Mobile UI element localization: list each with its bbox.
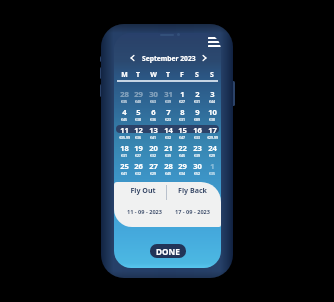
button[interactable]: 9 (188, 107, 206, 117)
button[interactable]: 3 (203, 89, 221, 99)
staticText: €39 (194, 153, 200, 158)
button[interactable]: 30 (144, 89, 162, 99)
staticText: €52 (194, 171, 200, 176)
staticText: S (195, 70, 199, 79)
button[interactable]: 8 (173, 107, 191, 117)
staticText: 28 (120, 89, 129, 99)
staticText: 25 (120, 161, 129, 171)
staticText: €33 (194, 135, 200, 140)
staticText: 11 (120, 125, 129, 135)
button[interactable]: Next month (199, 51, 209, 65)
button[interactable]: 1 (173, 89, 191, 99)
button[interactable]: 28 (115, 89, 133, 99)
button[interactable]: 17 (203, 125, 221, 135)
button[interactable]: 15 (173, 125, 191, 135)
button[interactable]: 27 (144, 161, 162, 171)
button[interactable]: 21 (159, 143, 177, 153)
staticText: 13 (149, 125, 158, 135)
button[interactable]: 29 (173, 161, 191, 171)
button[interactable]: Fly Out (117, 185, 169, 195)
staticText: 27 (149, 161, 158, 171)
staticText: 5 (136, 107, 141, 117)
staticText: €38 (209, 117, 215, 122)
staticText: 9 (195, 107, 200, 117)
button[interactable]: 4 (115, 107, 133, 117)
staticText: €45 (121, 117, 127, 122)
staticText: F (180, 70, 184, 79)
staticText: €38 (135, 117, 141, 122)
staticText: 2 (195, 89, 200, 99)
staticText: €44 (209, 99, 215, 104)
button[interactable]: 24 (203, 143, 221, 153)
button[interactable]: 18 (115, 143, 133, 153)
staticText: 17 (208, 125, 217, 135)
button[interactable]: 26 (129, 161, 147, 171)
button[interactable]: 13 (144, 125, 162, 135)
staticText: €40 (135, 99, 141, 104)
button[interactable]: 25 (115, 161, 133, 171)
button[interactable]: 2 (188, 89, 206, 99)
button[interactable]: 10 (203, 107, 221, 117)
staticText: €36 (135, 135, 141, 140)
staticText: 29 (134, 89, 143, 99)
button[interactable]: 30 (188, 161, 206, 171)
button[interactable]: DONE (150, 244, 186, 258)
button[interactable]: 16 (188, 125, 206, 135)
staticText: €39 (165, 99, 171, 104)
staticText: 14 (164, 125, 173, 135)
button[interactable]: 5 (129, 107, 147, 117)
staticText: September 2023 (142, 54, 196, 63)
staticText: 30 (193, 161, 202, 171)
staticText: 12 (134, 125, 143, 135)
staticText: 19 (134, 143, 143, 153)
staticText: 24 (208, 143, 217, 153)
staticText: Fly Back (178, 185, 207, 195)
staticText: €32 (135, 171, 141, 176)
button[interactable]: 7 (159, 107, 177, 117)
staticText: 1 (180, 89, 185, 99)
staticText: €32 (165, 135, 171, 140)
staticText: 4 (122, 107, 127, 117)
button[interactable]: 23 (188, 143, 206, 153)
button[interactable]: 12 (129, 125, 147, 135)
button[interactable]: 20 (144, 143, 162, 153)
staticText: 18 (120, 143, 129, 153)
staticText: €29.99 (207, 135, 218, 140)
staticText: T (166, 70, 170, 79)
staticText: €47 (179, 135, 185, 140)
staticText: 15 (178, 125, 187, 135)
staticText: 22 (178, 143, 187, 153)
staticText: €27 (179, 99, 185, 104)
staticText: 31 (164, 89, 173, 99)
staticText: T (136, 70, 140, 79)
staticText: 21 (164, 143, 173, 153)
staticText: €31 (179, 117, 185, 122)
button[interactable]: 6 (144, 107, 162, 117)
button[interactable]: 29 (129, 89, 147, 99)
staticText: 3 (210, 89, 215, 99)
staticText: 1 (210, 161, 215, 171)
staticText: €35.99 (119, 135, 130, 140)
staticText: 16 (193, 125, 202, 135)
staticText: €45 (165, 171, 171, 176)
button[interactable]: 11 (115, 125, 133, 135)
staticText: 7 (166, 107, 171, 117)
staticText: €31 (194, 99, 200, 104)
button[interactable]: Menu (206, 35, 221, 48)
button[interactable]: 14 (159, 125, 177, 135)
button[interactable]: Fly Back (166, 185, 218, 195)
staticText: 26 (134, 161, 143, 171)
staticText: €45 (179, 153, 185, 158)
staticText: 11 - 09 - 2023 (127, 208, 162, 216)
staticText: 17 - 09 - 2023 (175, 208, 210, 216)
button[interactable]: 1 (203, 161, 221, 171)
button[interactable]: Previous month (127, 51, 137, 65)
staticText: DONE (156, 246, 180, 257)
button[interactable]: 19 (129, 143, 147, 153)
button[interactable]: 31 (159, 89, 177, 99)
button[interactable]: 22 (173, 143, 191, 153)
staticText: 20 (149, 143, 158, 153)
staticText: €41 (121, 171, 127, 176)
button[interactable]: 28 (159, 161, 177, 171)
staticText: 10 (208, 107, 217, 117)
